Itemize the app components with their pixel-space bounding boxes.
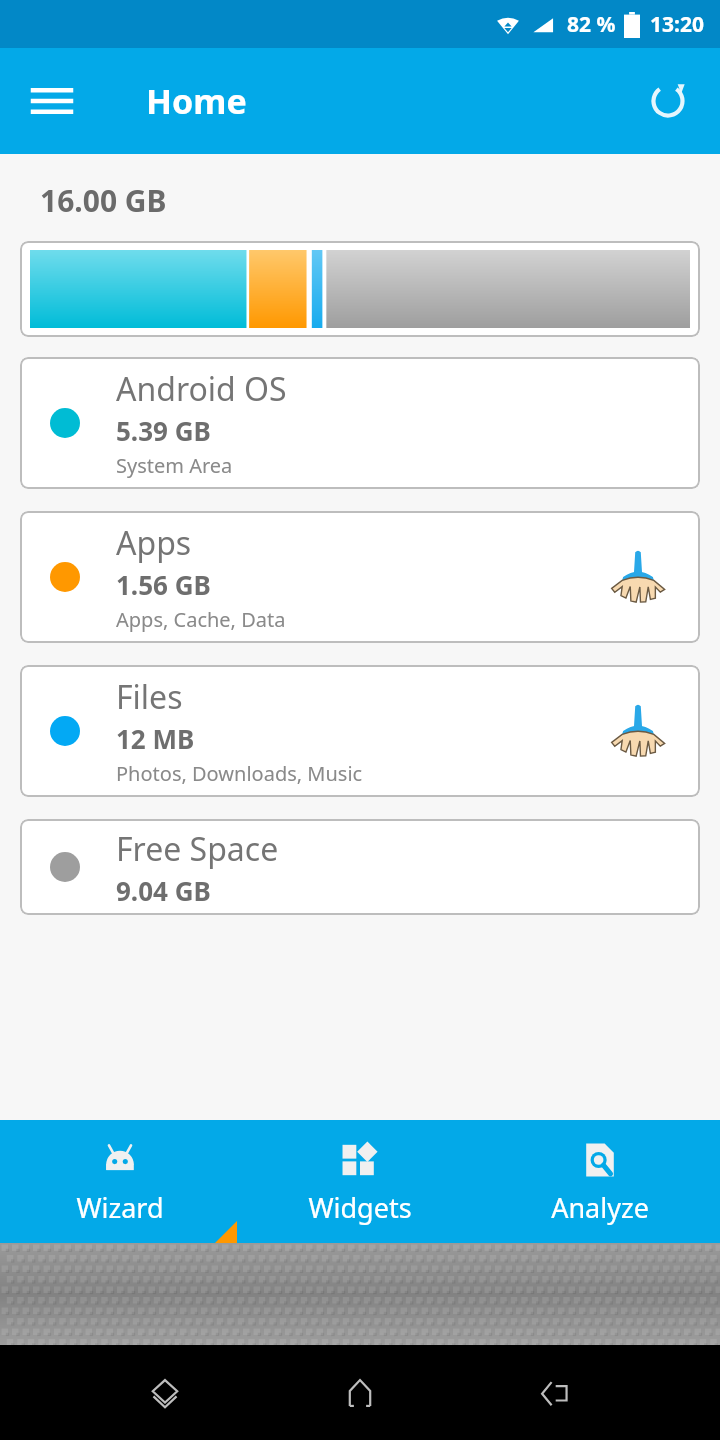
button[interactable]: Wizard xyxy=(0,1120,240,1243)
staticText: Widgets xyxy=(308,1189,412,1226)
button[interactable]: Home xyxy=(330,1363,390,1423)
staticText: 13:20 xyxy=(650,10,704,39)
staticText: 1.56 GB xyxy=(116,567,211,602)
button[interactable]: Back xyxy=(525,1363,585,1423)
staticText: 9.04 GB xyxy=(116,873,211,908)
button[interactable]: Widgets xyxy=(240,1120,480,1243)
button[interactable] xyxy=(20,241,700,337)
staticText: Files xyxy=(116,675,183,719)
button[interactable]: Clean xyxy=(600,693,676,769)
button[interactable]: Overview xyxy=(135,1363,195,1423)
staticText: Android OS xyxy=(116,367,287,411)
staticText: 5.39 GB xyxy=(116,413,211,448)
button[interactable]: Free Space xyxy=(20,819,700,915)
staticText: Home xyxy=(146,78,247,124)
staticText: Apps, Cache, Data xyxy=(116,606,286,633)
staticText: Apps xyxy=(116,521,192,565)
button[interactable]: Menu xyxy=(24,73,80,129)
button[interactable]: Analyze xyxy=(480,1120,720,1243)
staticText: 82 % xyxy=(567,10,616,39)
staticText: 16.00 GB xyxy=(40,180,167,221)
staticText: Wizard xyxy=(76,1189,164,1226)
staticText: System Area xyxy=(116,452,233,479)
staticText: Photos, Downloads, Music xyxy=(116,760,363,787)
button[interactable]: Files xyxy=(20,665,700,797)
button[interactable]: Refresh xyxy=(640,73,696,129)
staticText: Free Space xyxy=(116,827,279,871)
button[interactable]: Android OS xyxy=(20,357,700,489)
staticText: Analyze xyxy=(551,1189,649,1226)
button[interactable]: Apps xyxy=(20,511,700,643)
staticText: 12 MB xyxy=(116,721,195,756)
button[interactable]: Clean xyxy=(600,539,676,615)
